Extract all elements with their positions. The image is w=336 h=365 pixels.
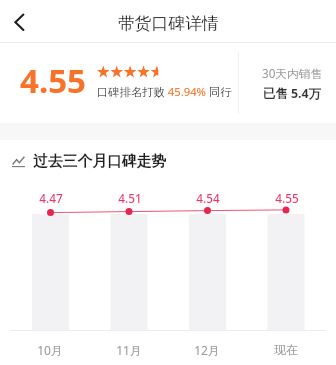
staticText: 10月 [37,342,63,358]
staticText: 12月 [194,342,220,358]
staticText: 口碑排名打败 45.94% 同行 [97,84,232,99]
staticText: 4.47 [39,190,63,206]
button[interactable]: Back [0,0,42,42]
staticText: 4.51 [118,190,142,206]
button[interactable]: 4.55 [0,43,336,123]
staticText: 30天内销售 [262,65,323,81]
staticText: 已售 5.4万 [263,85,322,102]
staticText: 4.54 [196,190,220,206]
staticText: 4.55 [275,190,299,206]
staticText: 11月 [116,342,142,358]
staticText: 4.55 [20,58,86,103]
staticText: 现在 [274,342,298,357]
staticText: 带货口碑详情 [118,13,219,34]
staticText: 过去三个月口碑走势 [33,152,167,171]
